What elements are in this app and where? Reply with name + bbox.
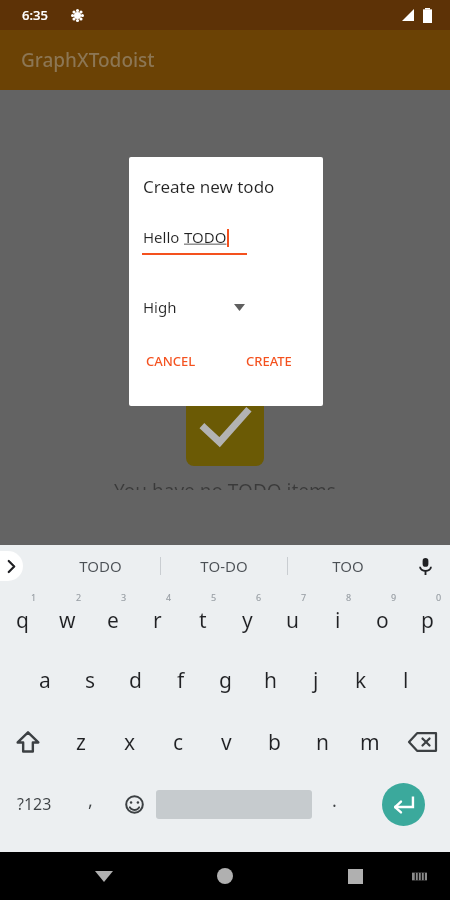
button[interactable]: 7	[270, 587, 315, 649]
button[interactable]: ,	[68, 773, 112, 835]
staticText: TO-DO	[200, 556, 248, 576]
button[interactable]: Space	[156, 773, 312, 835]
button[interactable]: Home	[205, 856, 245, 896]
staticText: w	[59, 606, 76, 635]
button[interactable]: s	[68, 649, 113, 711]
staticText: GraphXTodoist	[21, 47, 155, 73]
staticText: y	[242, 606, 253, 635]
button[interactable]: 9	[360, 587, 405, 649]
button[interactable]: l	[383, 649, 428, 711]
staticText: t	[199, 606, 207, 635]
button[interactable]: Switch keyboard	[402, 859, 436, 893]
staticText: g	[219, 666, 232, 695]
staticText: Hello	[143, 227, 184, 247]
staticText: 8	[346, 591, 352, 603]
button[interactable]: Shift	[0, 711, 56, 773]
button[interactable]: f	[158, 649, 203, 711]
staticText: h	[264, 666, 277, 695]
staticText: High	[143, 297, 177, 317]
staticText: TOO	[332, 556, 364, 576]
staticText: c	[173, 728, 184, 757]
staticText: CANCEL	[146, 352, 196, 370]
button[interactable]: Expand suggestions	[0, 551, 23, 581]
staticText: i	[335, 606, 341, 635]
staticText: p	[421, 606, 434, 635]
button[interactable]: 1	[0, 587, 45, 649]
button[interactable]: v	[202, 711, 250, 773]
staticText: TODO	[184, 227, 227, 247]
staticText: 6	[256, 591, 262, 603]
staticText: k	[355, 666, 367, 695]
staticText: 4	[166, 591, 172, 603]
button[interactable]: z	[56, 711, 105, 773]
staticText: ?123	[17, 793, 52, 815]
button[interactable]: x	[105, 711, 154, 773]
staticText: 6:35	[22, 6, 48, 24]
button[interactable]: 3	[90, 587, 135, 649]
staticText: .	[332, 788, 337, 813]
button[interactable]: k	[338, 649, 383, 711]
button[interactable]: 2	[45, 587, 90, 649]
staticText: a	[39, 666, 51, 695]
staticText: v	[221, 728, 232, 757]
staticText: 0	[436, 591, 442, 603]
button[interactable]: Enter	[356, 773, 450, 835]
staticText: o	[376, 606, 389, 635]
button[interactable]: TODO	[52, 545, 148, 587]
button[interactable]: TO-DO	[176, 545, 272, 587]
staticText: q	[16, 606, 29, 635]
staticText: 2	[76, 591, 82, 603]
staticText: r	[153, 606, 162, 635]
staticText: d	[129, 666, 142, 695]
staticText: 9	[391, 591, 397, 603]
button[interactable]: 5	[180, 587, 225, 649]
button[interactable]: Back	[84, 856, 124, 896]
button[interactable]: j	[293, 649, 338, 711]
button[interactable]: CANCEL	[143, 348, 199, 374]
button[interactable]: n	[298, 711, 346, 773]
staticText: Create new todo	[143, 175, 275, 198]
button[interactable]: 8	[315, 587, 360, 649]
staticText: f	[177, 666, 185, 695]
staticText: u	[286, 606, 299, 635]
staticText: s	[85, 666, 96, 695]
button[interactable]: Recents	[335, 856, 375, 896]
button[interactable]: ?123	[0, 773, 68, 835]
staticText: 7	[301, 591, 307, 603]
button[interactable]: b	[250, 711, 298, 773]
button[interactable]: 0	[405, 587, 450, 649]
button[interactable]: CREATE	[243, 348, 295, 374]
button[interactable]: c	[154, 711, 202, 773]
staticText: z	[76, 728, 86, 757]
staticText: b	[268, 728, 281, 757]
staticText: m	[360, 728, 380, 757]
button[interactable]: Backspace	[394, 711, 450, 773]
staticText: x	[124, 728, 136, 757]
staticText: 1	[31, 591, 37, 603]
staticText: 3	[121, 591, 127, 603]
button[interactable]: g	[203, 649, 248, 711]
button[interactable]: TOO	[300, 545, 396, 587]
staticText: l	[403, 666, 409, 695]
button[interactable]: 4	[135, 587, 180, 649]
staticText: TODO	[79, 556, 122, 576]
staticText: 5	[211, 591, 217, 603]
button[interactable]: 6	[225, 587, 270, 649]
button[interactable]: Hello	[129, 227, 323, 247]
staticText: You have no TODO items	[114, 478, 336, 490]
button[interactable]: h	[248, 649, 293, 711]
staticText: j	[313, 666, 319, 695]
staticText: CREATE	[246, 352, 292, 370]
button[interactable]: .	[312, 773, 356, 835]
button[interactable]: High	[129, 290, 323, 324]
staticText: n	[316, 728, 329, 757]
button[interactable]: a	[22, 649, 68, 711]
button[interactable]: m	[346, 711, 394, 773]
staticText: e	[107, 606, 119, 635]
staticText: ,	[88, 788, 93, 813]
button[interactable]: d	[113, 649, 158, 711]
button[interactable]: Emoji	[112, 773, 156, 835]
button[interactable]: Voice input	[412, 553, 438, 579]
